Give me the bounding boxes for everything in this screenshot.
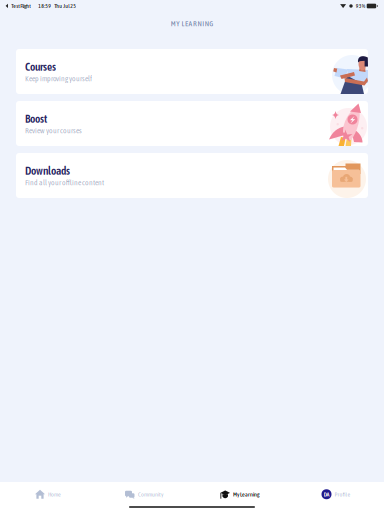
staticText: Thu Jul 25 <box>54 3 76 9</box>
staticText: Boost <box>25 112 47 125</box>
staticText: My Learning <box>233 491 260 498</box>
staticText: Community <box>138 491 163 498</box>
staticText: TestFlight <box>11 3 31 9</box>
button[interactable]: DA <box>288 482 384 506</box>
button[interactable]: Community <box>96 482 192 506</box>
button[interactable]: My Learning <box>192 482 288 506</box>
button[interactable]: Boost <box>16 101 368 146</box>
staticText: Courses <box>25 60 56 73</box>
staticText: Review your courses <box>25 126 82 135</box>
staticText: 93% <box>356 3 365 9</box>
staticText: Profile <box>334 491 350 498</box>
staticText: Keep improving yourself <box>25 74 92 83</box>
staticText: DA <box>323 491 329 498</box>
staticText: 18:59 <box>38 3 51 9</box>
button[interactable]: Home <box>0 482 96 506</box>
staticText: MY LEARNING <box>171 19 213 28</box>
button[interactable]: Downloads <box>16 153 368 198</box>
staticText: Downloads <box>25 164 70 177</box>
staticText: Find all your offline content <box>25 178 104 187</box>
button[interactable]: Courses <box>16 49 368 94</box>
staticText: Home <box>48 491 61 498</box>
